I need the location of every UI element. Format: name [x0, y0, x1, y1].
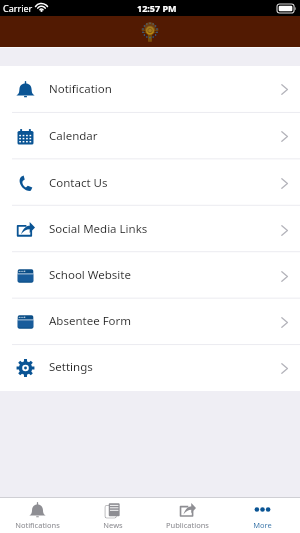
button[interactable]: More	[225, 498, 300, 533]
button[interactable]: Notification	[0, 66, 300, 113]
staticText: Contact Us	[49, 175, 108, 191]
staticText: More	[253, 520, 272, 530]
staticText: Settings	[49, 359, 93, 375]
staticText: School Website	[49, 267, 131, 283]
staticText: Notification	[49, 81, 112, 97]
staticText: Publications	[166, 520, 209, 530]
staticText: Absentee Form	[49, 313, 132, 329]
staticText: Carrier	[3, 2, 33, 14]
button[interactable]: Contact Us	[0, 160, 300, 207]
button[interactable]: Calendar	[0, 113, 300, 160]
button[interactable]: Notifications	[0, 498, 75, 533]
button[interactable]: School Website	[0, 253, 300, 299]
staticText: News	[103, 520, 123, 530]
button[interactable]: Absentee Form	[0, 299, 300, 345]
button[interactable]: News	[75, 498, 150, 533]
staticText: Social Media Links	[49, 221, 148, 237]
button[interactable]: Publications	[150, 498, 225, 533]
button[interactable]: Social Media Links	[0, 207, 300, 253]
staticText: 12:57 PM	[137, 2, 177, 14]
staticText: Calendar	[49, 128, 98, 144]
staticText: Notifications	[15, 520, 60, 530]
button[interactable]: Settings	[0, 345, 300, 391]
